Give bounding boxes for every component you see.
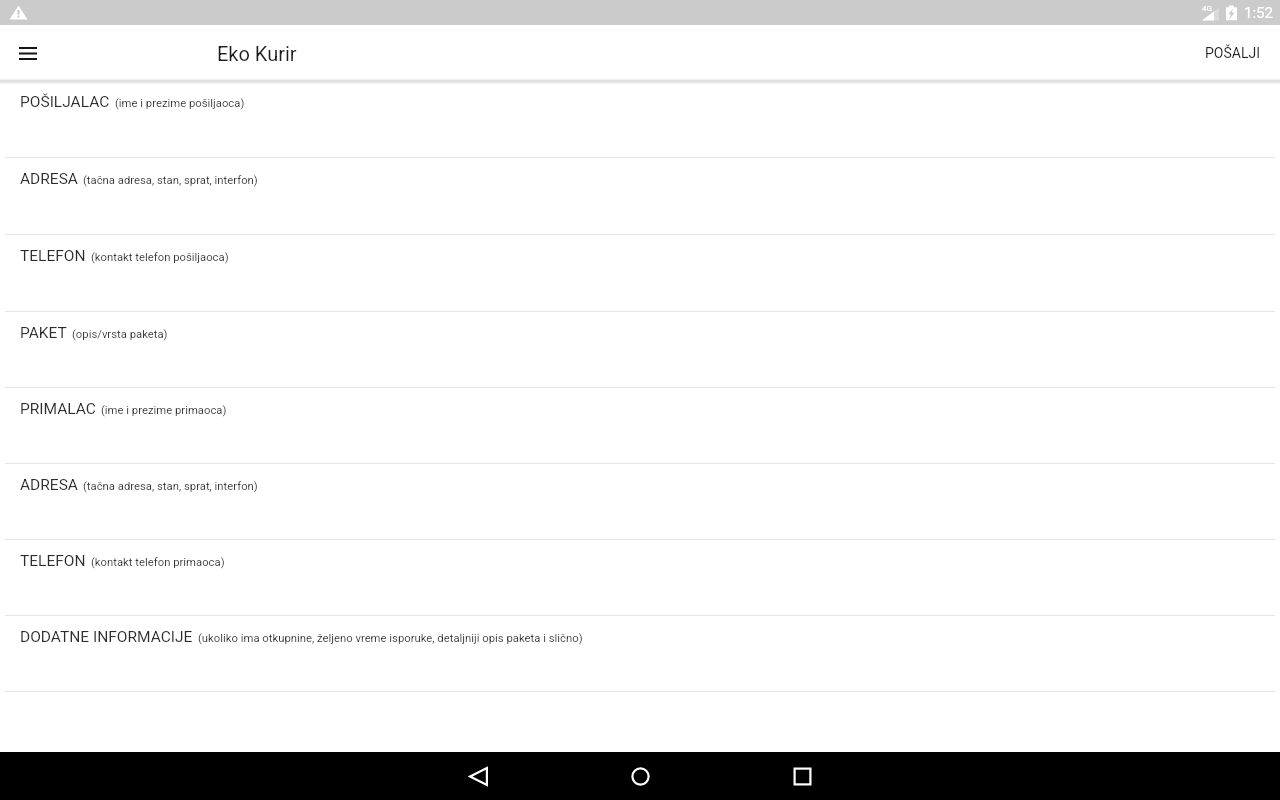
staticText: POŠALJI — [1205, 45, 1260, 61]
button[interactable]: TELEFON — [0, 540, 1280, 616]
staticText: ADRESA — [20, 476, 78, 494]
staticText: PAKET — [20, 324, 67, 342]
button[interactable]: ADRESA — [0, 158, 1280, 235]
button[interactable]: DODATNE INFORMACIJE — [0, 616, 1280, 692]
staticText: TELEFON — [20, 247, 86, 265]
staticText: (tačna adresa, stan, sprat, interfon) — [83, 174, 258, 187]
button[interactable]: Home — [616, 752, 664, 800]
button[interactable]: PAKET — [0, 312, 1280, 388]
staticText: (ime i prezime pošiljaoca) — [115, 97, 245, 110]
staticText: (opis/vrsta paketa) — [72, 328, 168, 341]
staticText: POŠILJALAC — [20, 93, 110, 111]
button[interactable]: Recent apps — [778, 752, 826, 800]
staticText: (kontakt telefon primaoca) — [91, 556, 225, 569]
button[interactable]: Open navigation menu — [0, 25, 56, 81]
button[interactable]: POŠILJALAC — [0, 81, 1280, 158]
button[interactable]: TELEFON — [0, 235, 1280, 312]
staticText: ADRESA — [20, 170, 78, 188]
staticText: Eko Kurir — [217, 42, 297, 65]
staticText: (ime i prezime primaoca) — [101, 404, 227, 417]
staticText: TELEFON — [20, 552, 86, 570]
button[interactable]: PRIMALAC — [0, 388, 1280, 464]
button[interactable]: POŠALJI — [1185, 25, 1280, 81]
staticText: 4G — [1202, 4, 1212, 13]
staticText: DODATNE INFORMACIJE — [20, 628, 193, 646]
staticText: (tačna adresa, stan, sprat, interfon) — [83, 480, 258, 493]
button[interactable]: ADRESA — [0, 464, 1280, 540]
staticText: PRIMALAC — [20, 400, 96, 418]
staticText: (ukoliko ima otkupnine, željeno vreme is… — [198, 632, 583, 645]
staticText: 1:52 — [1244, 4, 1273, 22]
button[interactable]: Back — [454, 752, 502, 800]
staticText: (kontakt telefon pošiljaoca) — [91, 251, 229, 264]
